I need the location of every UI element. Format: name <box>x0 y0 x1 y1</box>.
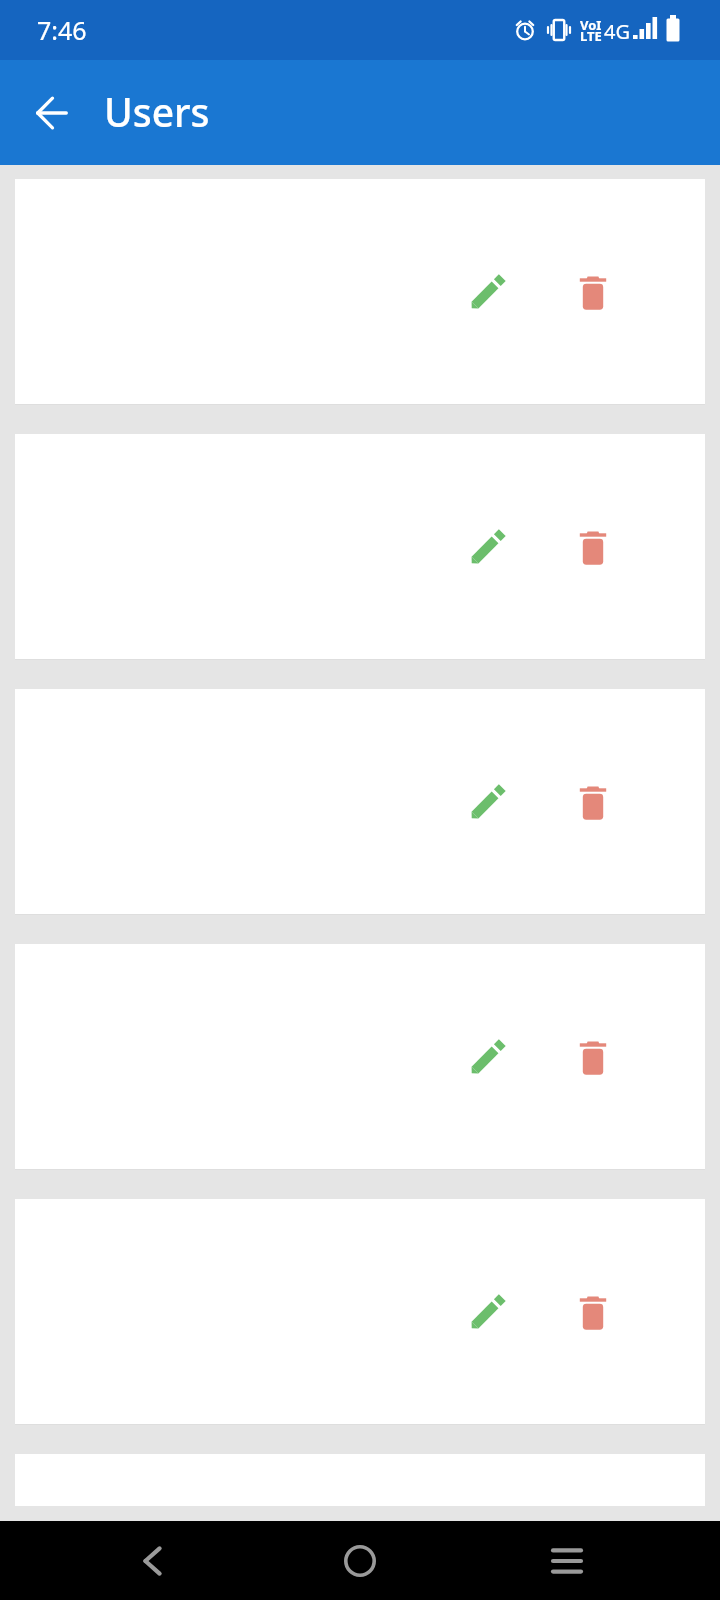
button[interactable]: Delete <box>553 508 633 588</box>
button[interactable]: Delete <box>553 1273 633 1353</box>
button[interactable]: User <box>15 434 705 659</box>
button[interactable]: Delete <box>553 253 633 333</box>
button[interactable]: User <box>15 179 705 404</box>
button[interactable]: User <box>15 1199 705 1424</box>
button[interactable]: Delete <box>553 763 633 843</box>
button[interactable]: Edit <box>447 1018 527 1098</box>
staticText: 7:46 <box>37 13 87 47</box>
button[interactable]: Back <box>25 86 79 140</box>
button[interactable]: Recent apps <box>527 1521 607 1600</box>
button[interactable]: Delete <box>553 1018 633 1098</box>
staticText: 4G <box>604 18 630 45</box>
button[interactable]: User <box>15 689 705 914</box>
button[interactable]: Edit <box>447 508 527 588</box>
button[interactable]: Home <box>320 1521 400 1600</box>
staticText: Users <box>104 85 210 138</box>
staticText: LTE <box>580 27 602 45</box>
button[interactable]: Edit <box>447 1273 527 1353</box>
button[interactable]: User <box>15 944 705 1169</box>
staticText: VoI <box>580 16 602 34</box>
button[interactable]: Edit <box>447 763 527 843</box>
button[interactable]: Edit <box>447 253 527 333</box>
button[interactable]: Back <box>112 1521 192 1600</box>
